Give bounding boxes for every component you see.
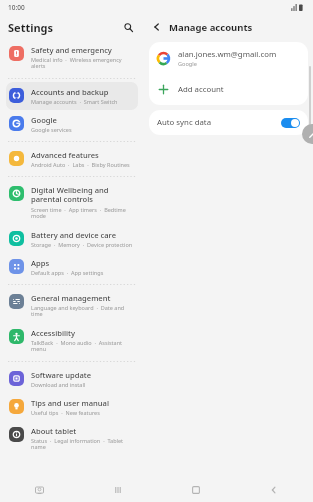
button[interactable]: Apps — [4, 253, 140, 281]
staticText: 10:00 — [8, 3, 25, 12]
button[interactable]: Home — [157, 478, 235, 502]
staticText: Auto sync data — [157, 117, 212, 128]
button[interactable]: General management — [4, 288, 140, 323]
button[interactable]: Back — [148, 18, 166, 36]
staticText: Screen time · App timers · Bedtime mode — [31, 206, 136, 220]
staticText: alan.jones.wm@gmail.com — [178, 49, 277, 60]
staticText: Advanced features — [31, 150, 99, 160]
staticText: Manage accounts — [169, 21, 253, 34]
staticText: Software update — [31, 370, 92, 380]
staticText: Accessibility — [31, 328, 75, 338]
button[interactable]: Google — [4, 110, 140, 138]
button[interactable]: Auto sync data — [149, 110, 308, 135]
staticText: Safety and emergency — [31, 45, 112, 55]
staticText: Google — [178, 60, 197, 68]
staticText: Download and install — [31, 381, 86, 388]
button[interactable]: Screenshot — [0, 478, 79, 502]
button[interactable]: Back — [235, 478, 313, 502]
button[interactable]: About tablet — [4, 421, 140, 456]
staticText: Digital Wellbeing and parental controls — [31, 185, 136, 205]
staticText: Manage accounts · Smart Switch — [31, 98, 118, 105]
button[interactable]: alan.jones.wm@gmail.com — [149, 42, 308, 75]
staticText: TalkBack · Mono audio · Assistant menu — [31, 339, 136, 353]
staticText: Android Auto · Labs · Bixby Routines — [31, 161, 130, 168]
button[interactable]: Digital Wellbeing and parental controls — [4, 180, 140, 225]
staticText: Default apps · App settings — [31, 269, 104, 276]
staticText: Tips and user manual — [31, 398, 109, 408]
button[interactable]: Accessibility — [4, 323, 140, 358]
button[interactable]: Add account — [149, 75, 308, 105]
staticText: Google services — [31, 126, 72, 133]
staticText: Google — [31, 115, 57, 125]
staticText: Medical info · Wireless emergency alerts — [31, 56, 136, 70]
button[interactable]: Recents — [79, 478, 157, 502]
button[interactable]: Accounts and backup — [6, 82, 138, 110]
button[interactable]: Tips and user manual — [4, 393, 140, 421]
staticText: Language and keyboard · Date and time — [31, 304, 136, 318]
button[interactable]: Safety and emergency — [4, 40, 140, 75]
staticText: General management — [31, 293, 111, 303]
button[interactable]: Advanced features — [4, 145, 140, 173]
button[interactable]: Search — [120, 19, 136, 35]
staticText: Add account — [178, 84, 224, 95]
staticText: About tablet — [31, 426, 77, 436]
staticText: Settings — [8, 20, 54, 35]
staticText: Apps — [31, 258, 50, 268]
staticText: Storage · Memory · Device protection — [31, 241, 133, 248]
button[interactable]: Battery and device care — [4, 225, 140, 253]
staticText: Useful tips · New features — [31, 409, 100, 416]
staticText: Battery and device care — [31, 230, 116, 240]
button[interactable]: Software update — [4, 365, 140, 393]
staticText: Accounts and backup — [31, 87, 109, 97]
button[interactable]: Edit — [302, 124, 313, 144]
staticText: Status · Legal information · Tablet name — [31, 437, 136, 451]
